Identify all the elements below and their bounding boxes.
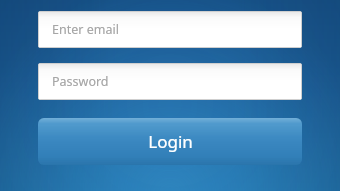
staticText: Enter email (52, 21, 119, 38)
button[interactable]: Enter email (38, 11, 302, 48)
button[interactable]: Password (38, 63, 302, 100)
button[interactable]: Login (38, 118, 302, 165)
staticText: Password (52, 73, 109, 90)
staticText: Login (148, 130, 193, 153)
